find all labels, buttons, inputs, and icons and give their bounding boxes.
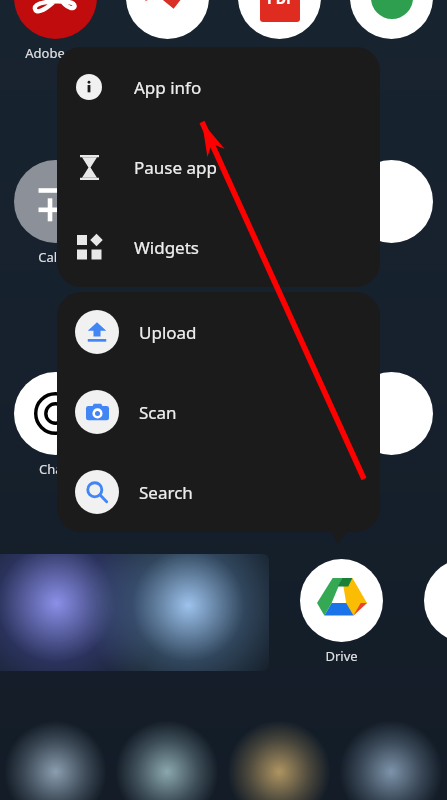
button[interactable]: Adobe A… [0,0,111,62]
staticText: Search [139,481,193,504]
button[interactable]: Calc… [0,160,111,266]
staticText: Pause app [134,156,217,179]
button[interactable]: Drive [299,559,383,665]
staticText: Upload [139,321,197,344]
button[interactable]: Search [57,452,380,532]
button[interactable]: Pause app [57,127,380,207]
button[interactable]: Widgets [57,207,380,287]
button[interactable]: Upload [57,292,380,372]
button[interactable] [111,0,223,44]
button[interactable]: App info [57,47,380,127]
staticText: Widgets [134,236,199,259]
button[interactable]: Cha… [0,372,111,478]
other: Annotation arrow [0,0,447,800]
button[interactable]: Scan [57,372,380,452]
button[interactable] [335,160,447,248]
staticText: App info [134,76,202,99]
staticText: Drive [325,647,358,665]
staticText: PDF [267,0,294,8]
button[interactable] [335,0,447,44]
staticText: Scan [139,401,177,424]
button[interactable] [335,372,447,460]
staticText: Cha… [39,460,73,478]
staticText: Calc… [38,248,74,266]
button[interactable]: PDF [223,0,335,62]
staticText: …der [264,44,295,62]
staticText: Adobe A… [25,44,87,62]
button[interactable] [0,554,269,671]
